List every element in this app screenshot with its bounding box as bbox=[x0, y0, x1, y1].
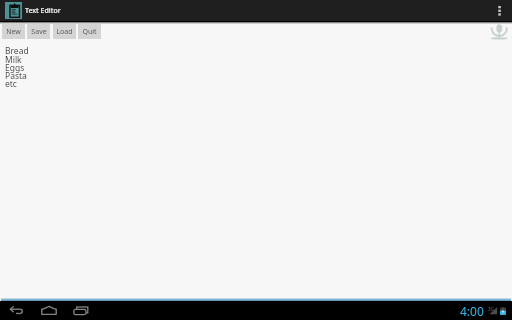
button[interactable]: Recent apps bbox=[71, 301, 93, 320]
button[interactable]: Load bbox=[53, 24, 76, 39]
staticText: 4:00 bbox=[460, 303, 484, 319]
staticText: Save bbox=[31, 27, 47, 37]
staticText: Quit bbox=[82, 27, 97, 37]
button[interactable]: Voice input bbox=[490, 23, 509, 40]
staticText: Load bbox=[56, 27, 73, 37]
button[interactable]: Home bbox=[38, 301, 60, 320]
staticText: New bbox=[6, 27, 21, 37]
button[interactable]: Save bbox=[27, 24, 50, 39]
button[interactable]: New bbox=[2, 24, 25, 39]
staticText: 3G bbox=[488, 306, 494, 312]
staticText: Text Editor bbox=[25, 6, 61, 16]
button[interactable]: Quit bbox=[78, 24, 101, 39]
button[interactable]: Back bbox=[5, 301, 28, 320]
button[interactable]: More options bbox=[488, 0, 510, 21]
staticText: Bread Milk Eggs Pasta etc bbox=[5, 45, 29, 89]
